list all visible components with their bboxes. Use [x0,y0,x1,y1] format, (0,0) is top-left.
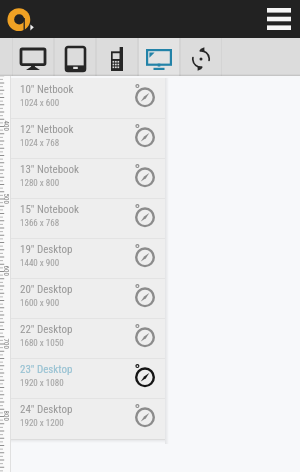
button[interactable]: 10" Netbook [11,78,165,118]
staticText: 1600 x 900 [20,298,60,309]
button[interactable]: Tablet [54,38,96,76]
button[interactable]: Menu [264,4,294,34]
staticText: 1024 x 600 [20,98,60,109]
staticText: 800 [1,410,9,421]
button[interactable]: 24" Desktop [11,398,165,438]
button[interactable]: Rotate [180,38,222,76]
staticText: 1920 x 1200 [20,418,64,429]
staticText: 1024 x 768 [20,138,60,149]
button[interactable]: 13" Notebook [11,158,165,198]
staticText: 1366 x 768 [20,218,60,229]
staticText: 20" Desktop [20,283,73,296]
staticText: 10" Netbook [20,83,74,96]
staticText: 19" Desktop [20,243,73,256]
button[interactable]: 20" Desktop [11,278,165,318]
button[interactable]: Feature phone [96,38,138,76]
button[interactable]: 23" Desktop [11,358,165,398]
staticText: 23" Desktop [20,363,73,376]
button[interactable]: Monitor [138,38,180,76]
staticText: 600 [1,265,9,276]
staticText: 24" Desktop [20,403,73,416]
button[interactable]: 12" Netbook [11,118,165,158]
button[interactable]: 22" Desktop [11,318,165,358]
button[interactable]: Home [6,6,34,32]
staticText: 500 [1,193,9,204]
button[interactable]: 19" Desktop [11,238,165,278]
staticText: 13" Notebook [20,163,80,176]
button[interactable]: 15" Notebook [11,198,165,238]
staticText: 1920 x 1080 [20,378,64,389]
staticText: 1280 x 800 [20,178,60,189]
staticText: 400 [1,120,9,131]
staticText: 15" Notebook [20,203,80,216]
staticText: 1680 x 1050 [20,338,64,349]
staticText: 1440 x 900 [20,258,60,269]
staticText: 12" Netbook [20,123,74,136]
staticText: 22" Desktop [20,323,73,336]
staticText: 700 [1,338,9,349]
button[interactable]: Desktop [12,38,54,76]
